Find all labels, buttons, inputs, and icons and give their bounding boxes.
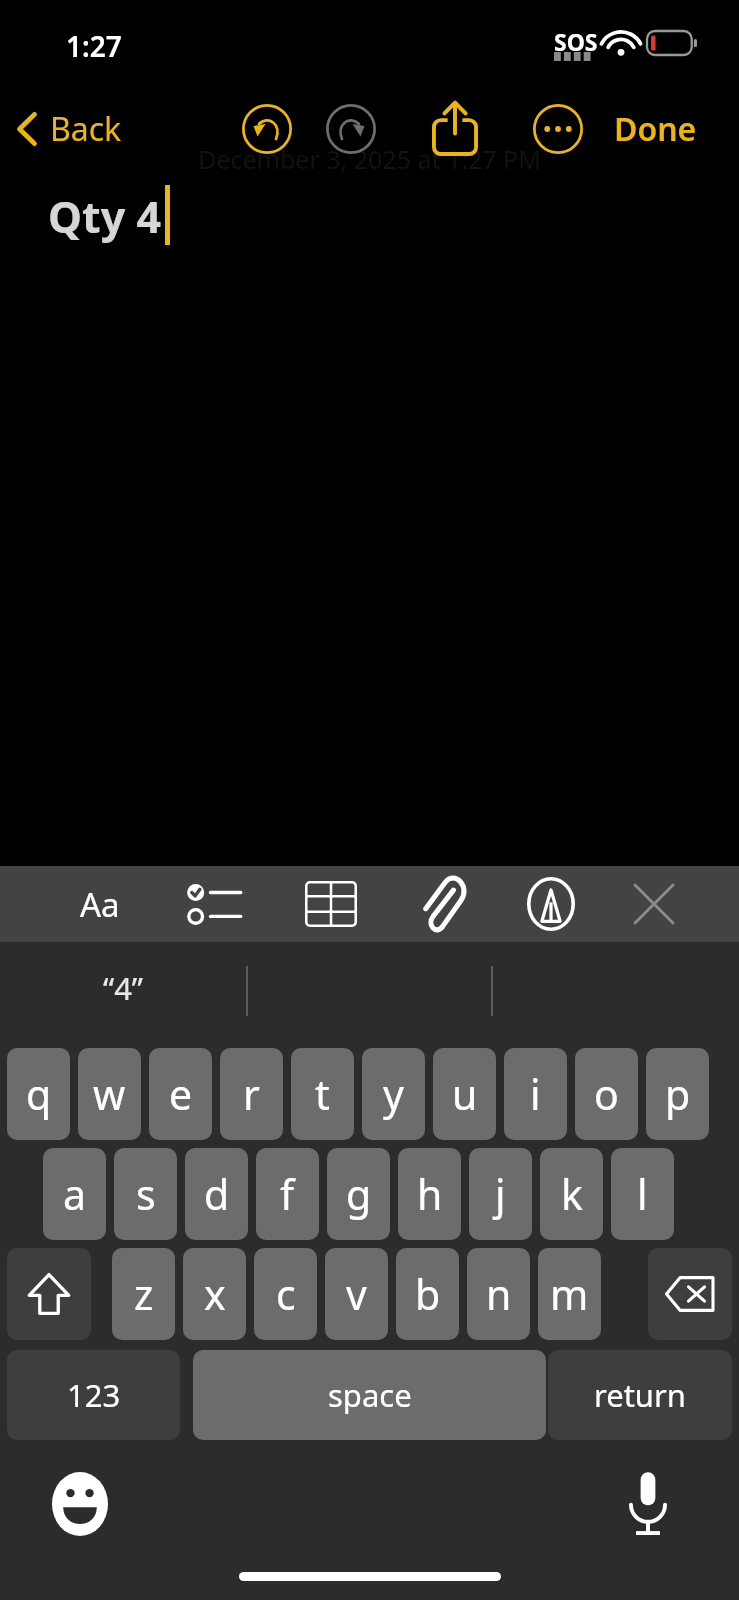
button[interactable]: g [327, 1148, 390, 1240]
button[interactable]: o [575, 1048, 638, 1140]
button[interactable]: Backspace [648, 1248, 732, 1340]
button[interactable]: h [398, 1148, 461, 1240]
button[interactable]: r [220, 1048, 283, 1140]
staticText: “4” [103, 967, 143, 1009]
button[interactable]: j [469, 1148, 532, 1240]
staticText: return [594, 1374, 686, 1416]
button[interactable]: a [43, 1148, 106, 1240]
button[interactable]: Done [604, 100, 707, 158]
staticText: e [169, 1066, 193, 1122]
staticText: f [280, 1166, 295, 1222]
button[interactable]: p [646, 1048, 709, 1140]
staticText: m [550, 1266, 589, 1322]
button[interactable]: space [193, 1350, 546, 1440]
staticText: Back [50, 107, 122, 151]
button[interactable]: e [149, 1048, 212, 1140]
staticText: n [486, 1266, 512, 1322]
button[interactable]: k [540, 1148, 603, 1240]
button[interactable]: More options [529, 100, 587, 158]
staticText: r [243, 1066, 260, 1122]
staticText: l [637, 1166, 648, 1222]
staticText: u [452, 1066, 478, 1122]
button[interactable]: Checklist [176, 874, 254, 934]
staticText: SOS [554, 26, 598, 57]
staticText: t [315, 1066, 330, 1122]
button[interactable]: Share [426, 96, 484, 160]
button[interactable]: n [467, 1248, 530, 1340]
staticText: space [328, 1374, 412, 1416]
button[interactable]: “4” [0, 942, 246, 1034]
button[interactable]: Back [6, 100, 132, 158]
staticText: q [26, 1066, 52, 1122]
button[interactable]: return [548, 1350, 732, 1440]
staticText: g [346, 1166, 372, 1222]
button[interactable]: s [114, 1148, 177, 1240]
button[interactable]: Redo [322, 100, 380, 158]
staticText: Qty 4 [48, 187, 162, 246]
button[interactable]: Shift [7, 1248, 91, 1340]
staticText: i [530, 1066, 541, 1122]
button[interactable]: Attach file [403, 872, 481, 936]
staticText: s [136, 1166, 156, 1222]
button[interactable]: b [396, 1248, 459, 1340]
button[interactable]: u [433, 1048, 496, 1140]
staticText: o [594, 1066, 619, 1122]
staticText: j [495, 1166, 506, 1222]
button[interactable]: Undo [238, 100, 296, 158]
staticText: 123 [67, 1374, 121, 1416]
staticText: Done [614, 107, 697, 151]
button[interactable]: i [504, 1048, 567, 1140]
button[interactable]: c [254, 1248, 317, 1340]
button[interactable]: w [78, 1048, 141, 1140]
staticText: p [665, 1066, 691, 1122]
staticText: k [561, 1166, 583, 1222]
staticText: w [93, 1066, 126, 1122]
staticText: a [63, 1166, 87, 1222]
button[interactable]: l [611, 1148, 674, 1240]
staticText: 1:27 [66, 27, 122, 65]
staticText: y [383, 1066, 404, 1122]
staticText: x [204, 1266, 226, 1322]
button[interactable]: q [7, 1048, 70, 1140]
button[interactable]: m [538, 1248, 601, 1340]
button[interactable]: v [325, 1248, 388, 1340]
staticText: z [134, 1266, 154, 1322]
staticText: d [204, 1166, 230, 1222]
button[interactable]: y [362, 1048, 425, 1140]
staticText: b [415, 1266, 441, 1322]
button[interactable]: 123 [7, 1350, 180, 1440]
button[interactable]: t [291, 1048, 354, 1140]
button[interactable]: Markup [512, 872, 590, 936]
staticText: c [276, 1266, 296, 1322]
button[interactable]: Emoji keyboard [40, 1464, 120, 1544]
button[interactable]: x [183, 1248, 246, 1340]
button[interactable]: Dictation [608, 1464, 688, 1544]
staticText: December 3, 2025 at 1:27 PM [198, 142, 541, 176]
staticText: Aa [80, 882, 120, 927]
button[interactable]: Hide keyboard [615, 874, 693, 934]
button[interactable]: Aa [60, 872, 140, 936]
button[interactable]: z [112, 1248, 175, 1340]
button[interactable]: d [185, 1148, 248, 1240]
staticText: v [346, 1266, 367, 1322]
button[interactable]: Table [292, 874, 370, 934]
staticText: h [417, 1166, 443, 1222]
button[interactable]: f [256, 1148, 319, 1240]
